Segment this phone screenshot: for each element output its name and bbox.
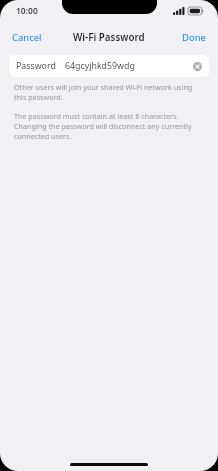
button[interactable]: Cancel xyxy=(0,26,54,49)
staticText: Cancel xyxy=(12,31,42,44)
staticText: 64gcyjhkd59wdg xyxy=(65,60,135,72)
button[interactable]: Done xyxy=(170,26,218,49)
staticText: 10:00 xyxy=(16,5,38,17)
staticText: The password must contain at least 8 cha… xyxy=(14,111,202,141)
button[interactable]: Clear text xyxy=(191,60,203,72)
staticText: Done xyxy=(182,31,206,44)
staticText: Wi-Fi Password xyxy=(73,31,145,44)
staticText: Password xyxy=(16,60,56,72)
button[interactable]: Password xyxy=(9,55,209,77)
staticText: Other users will join your shared Wi-Fi … xyxy=(14,82,202,102)
